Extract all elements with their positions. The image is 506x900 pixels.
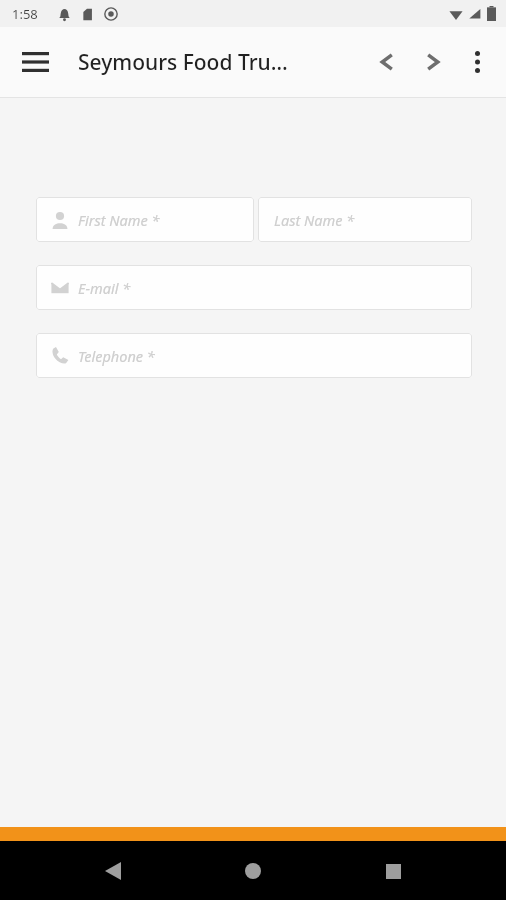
staticText: Last Name *: [274, 210, 355, 230]
staticText: Telephone *: [78, 346, 155, 366]
staticText: 1:58: [12, 5, 38, 23]
button[interactable]: Forward: [410, 39, 456, 85]
staticText: Seymours Food Tru…: [78, 48, 364, 77]
button[interactable]: Home: [226, 844, 280, 898]
button[interactable]: Back: [364, 39, 410, 85]
button[interactable]: E-mail *: [36, 265, 472, 310]
button[interactable]: Back: [86, 844, 140, 898]
staticText: First Name *: [78, 210, 160, 230]
button[interactable]: Recent apps: [366, 844, 420, 898]
button[interactable]: More options: [456, 41, 498, 83]
button[interactable]: First Name *: [36, 197, 254, 242]
button[interactable]: Open navigation menu: [14, 41, 56, 83]
button[interactable]: Last Name *: [258, 197, 472, 242]
staticText: E-mail *: [78, 278, 131, 298]
button[interactable]: Telephone *: [36, 333, 472, 378]
